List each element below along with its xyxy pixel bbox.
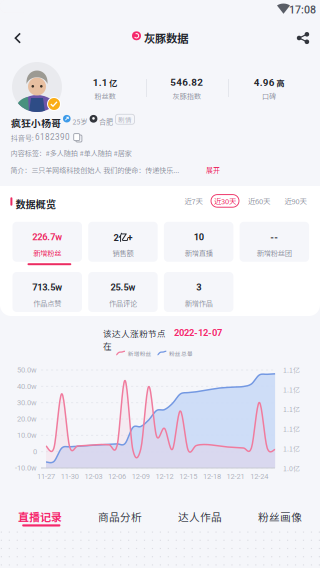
- staticText: 6182390: [35, 132, 70, 142]
- staticText: 3: [196, 282, 201, 293]
- staticText: 12-15: [179, 472, 197, 481]
- button[interactable]: 3: [0, 0, 69, 40]
- staticText: 作品点赞: [33, 298, 61, 308]
- button[interactable]: 2亿+: [0, 0, 69, 40]
- staticText: 546.82: [170, 77, 203, 88]
- staticText: 12-09: [132, 472, 150, 481]
- staticText: 4.96: [254, 77, 275, 88]
- staticText: 2亿+: [113, 232, 132, 243]
- button[interactable]: 713.5w: [0, 0, 69, 40]
- staticText: 30.0w: [17, 398, 37, 407]
- staticText: 1.1亿: [283, 404, 300, 414]
- staticText: 灰豚指数: [173, 91, 201, 101]
- staticText: 口碑: [262, 91, 276, 101]
- staticText: 1.1: [93, 77, 108, 88]
- staticText: 数据概览: [16, 196, 56, 211]
- staticText: 合肥: [99, 116, 113, 126]
- staticText: 1.1亿: [283, 365, 300, 375]
- button[interactable]: 226.7w: [0, 0, 69, 40]
- staticText: 11-30: [61, 472, 79, 481]
- staticText: 商品分析: [98, 509, 142, 524]
- staticText: 12-12: [155, 472, 173, 481]
- staticText: 1.1亿: [283, 443, 300, 453]
- staticText: 作品评论: [109, 298, 137, 308]
- staticText: 该达人涨粉节点在: [103, 327, 166, 352]
- staticText: 粉丝数: [94, 91, 115, 101]
- staticText: 近7天: [184, 195, 202, 206]
- staticText: 12-06: [108, 472, 126, 481]
- staticText: 12-21: [227, 472, 245, 481]
- staticText: 2022-12-07: [174, 327, 222, 338]
- staticText: 25.5w: [110, 282, 135, 293]
- staticText: 内容标签：#多人随拍 #单人随拍 #居家: [11, 148, 132, 158]
- staticText: 10: [194, 232, 204, 242]
- staticText: --: [270, 232, 278, 242]
- staticText: 销售额: [112, 248, 133, 258]
- staticText: 0: [33, 447, 37, 456]
- staticText: 抖音号:: [11, 132, 34, 143]
- staticText: 灰豚数据: [144, 29, 188, 46]
- button[interactable]: 25.5w: [0, 0, 69, 40]
- staticText: 近90天: [284, 195, 306, 206]
- staticText: 达人作品: [178, 509, 222, 524]
- staticText: 直播记录: [18, 509, 62, 524]
- staticText: 713.5w: [32, 282, 62, 293]
- staticText: 12-24: [250, 472, 268, 481]
- staticText: 11-27: [37, 472, 55, 481]
- staticText: -10.0w: [15, 464, 37, 472]
- staticText: 10.0w: [17, 431, 37, 440]
- staticText: 简介：三只羊网络科技创始人 我们的使命：传递快乐...: [10, 165, 179, 175]
- staticText: 1.1亿: [283, 424, 300, 434]
- staticText: 新增作品: [185, 298, 213, 308]
- staticText: 疯狂小杨哥: [11, 115, 61, 130]
- staticText: 12-18: [203, 472, 221, 481]
- staticText: 12-03: [84, 472, 102, 481]
- staticText: 17:08: [289, 3, 316, 16]
- staticText: 1.0亿: [283, 463, 300, 473]
- staticText: 新增粉丝团: [257, 248, 292, 258]
- staticText: 50.0w: [17, 366, 37, 374]
- staticText: 粉丝总量: [169, 349, 193, 358]
- staticText: 1.1亿: [283, 384, 300, 394]
- button[interactable]: --: [0, 0, 69, 40]
- staticText: 新增粉丝: [33, 248, 61, 258]
- staticText: 亿: [109, 77, 117, 89]
- staticText: 展开: [206, 165, 220, 175]
- staticText: 新增直播: [185, 248, 213, 258]
- staticText: 25岁: [72, 116, 87, 126]
- staticText: 粉丝画像: [258, 509, 302, 524]
- staticText: 近60天: [248, 195, 270, 206]
- staticText: 近30天: [214, 195, 236, 206]
- staticText: 226.7w: [32, 232, 62, 242]
- staticText: 40.0w: [17, 382, 37, 391]
- staticText: 高: [276, 77, 284, 89]
- staticText: 20.0w: [17, 415, 37, 423]
- staticText: 新增粉丝: [128, 349, 152, 358]
- staticText: 剧情: [118, 115, 132, 124]
- button[interactable]: 10: [0, 0, 69, 40]
